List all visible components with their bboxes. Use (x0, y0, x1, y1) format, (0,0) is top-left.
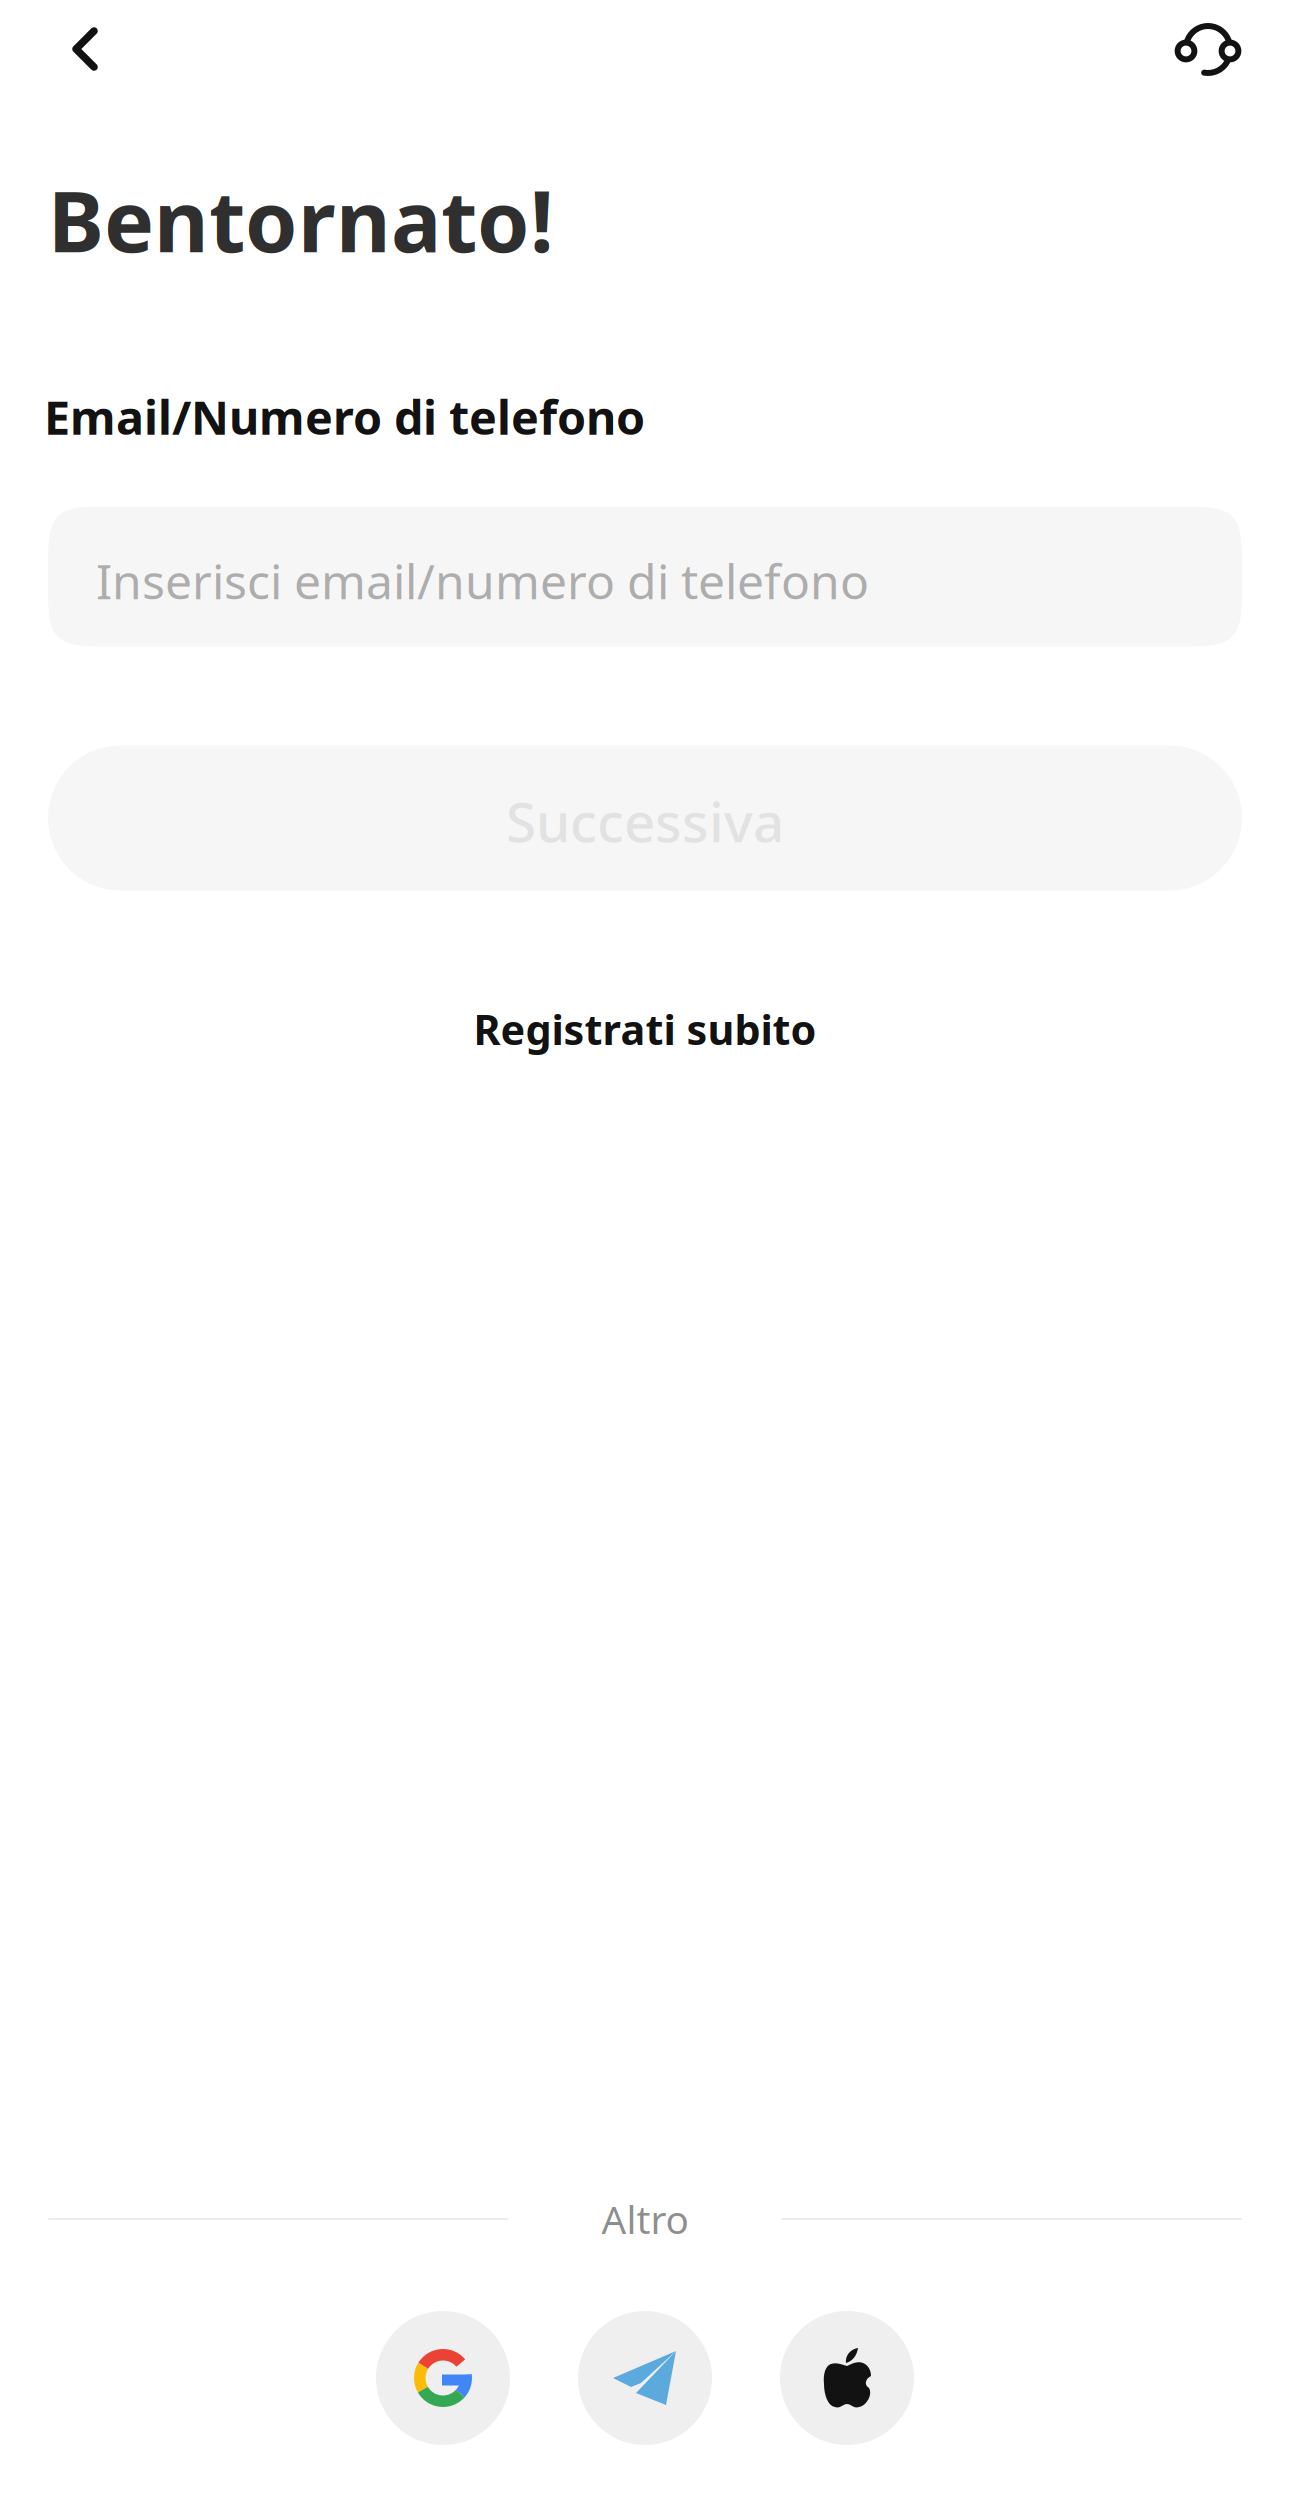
staticText: Email/Numero di telefono (44, 385, 645, 447)
staticText: Bentornato! (48, 164, 554, 275)
button[interactable]: Continue with Telegram (578, 2311, 712, 2445)
button[interactable]: Continue with Apple (780, 2311, 914, 2445)
button[interactable]: Back (18, 0, 152, 96)
staticText: Inserisci email/numero di telefono (96, 549, 869, 612)
staticText: Altro (601, 2193, 688, 2245)
button[interactable]: Continue with Google (376, 2311, 510, 2445)
staticText: Successiva (506, 785, 784, 857)
staticText: Registrati subito (473, 1001, 816, 1056)
button[interactable]: Customer support (1148, 0, 1268, 96)
button[interactable]: Successiva (48, 745, 1242, 890)
button[interactable]: Registrati subito (449, 983, 840, 1074)
